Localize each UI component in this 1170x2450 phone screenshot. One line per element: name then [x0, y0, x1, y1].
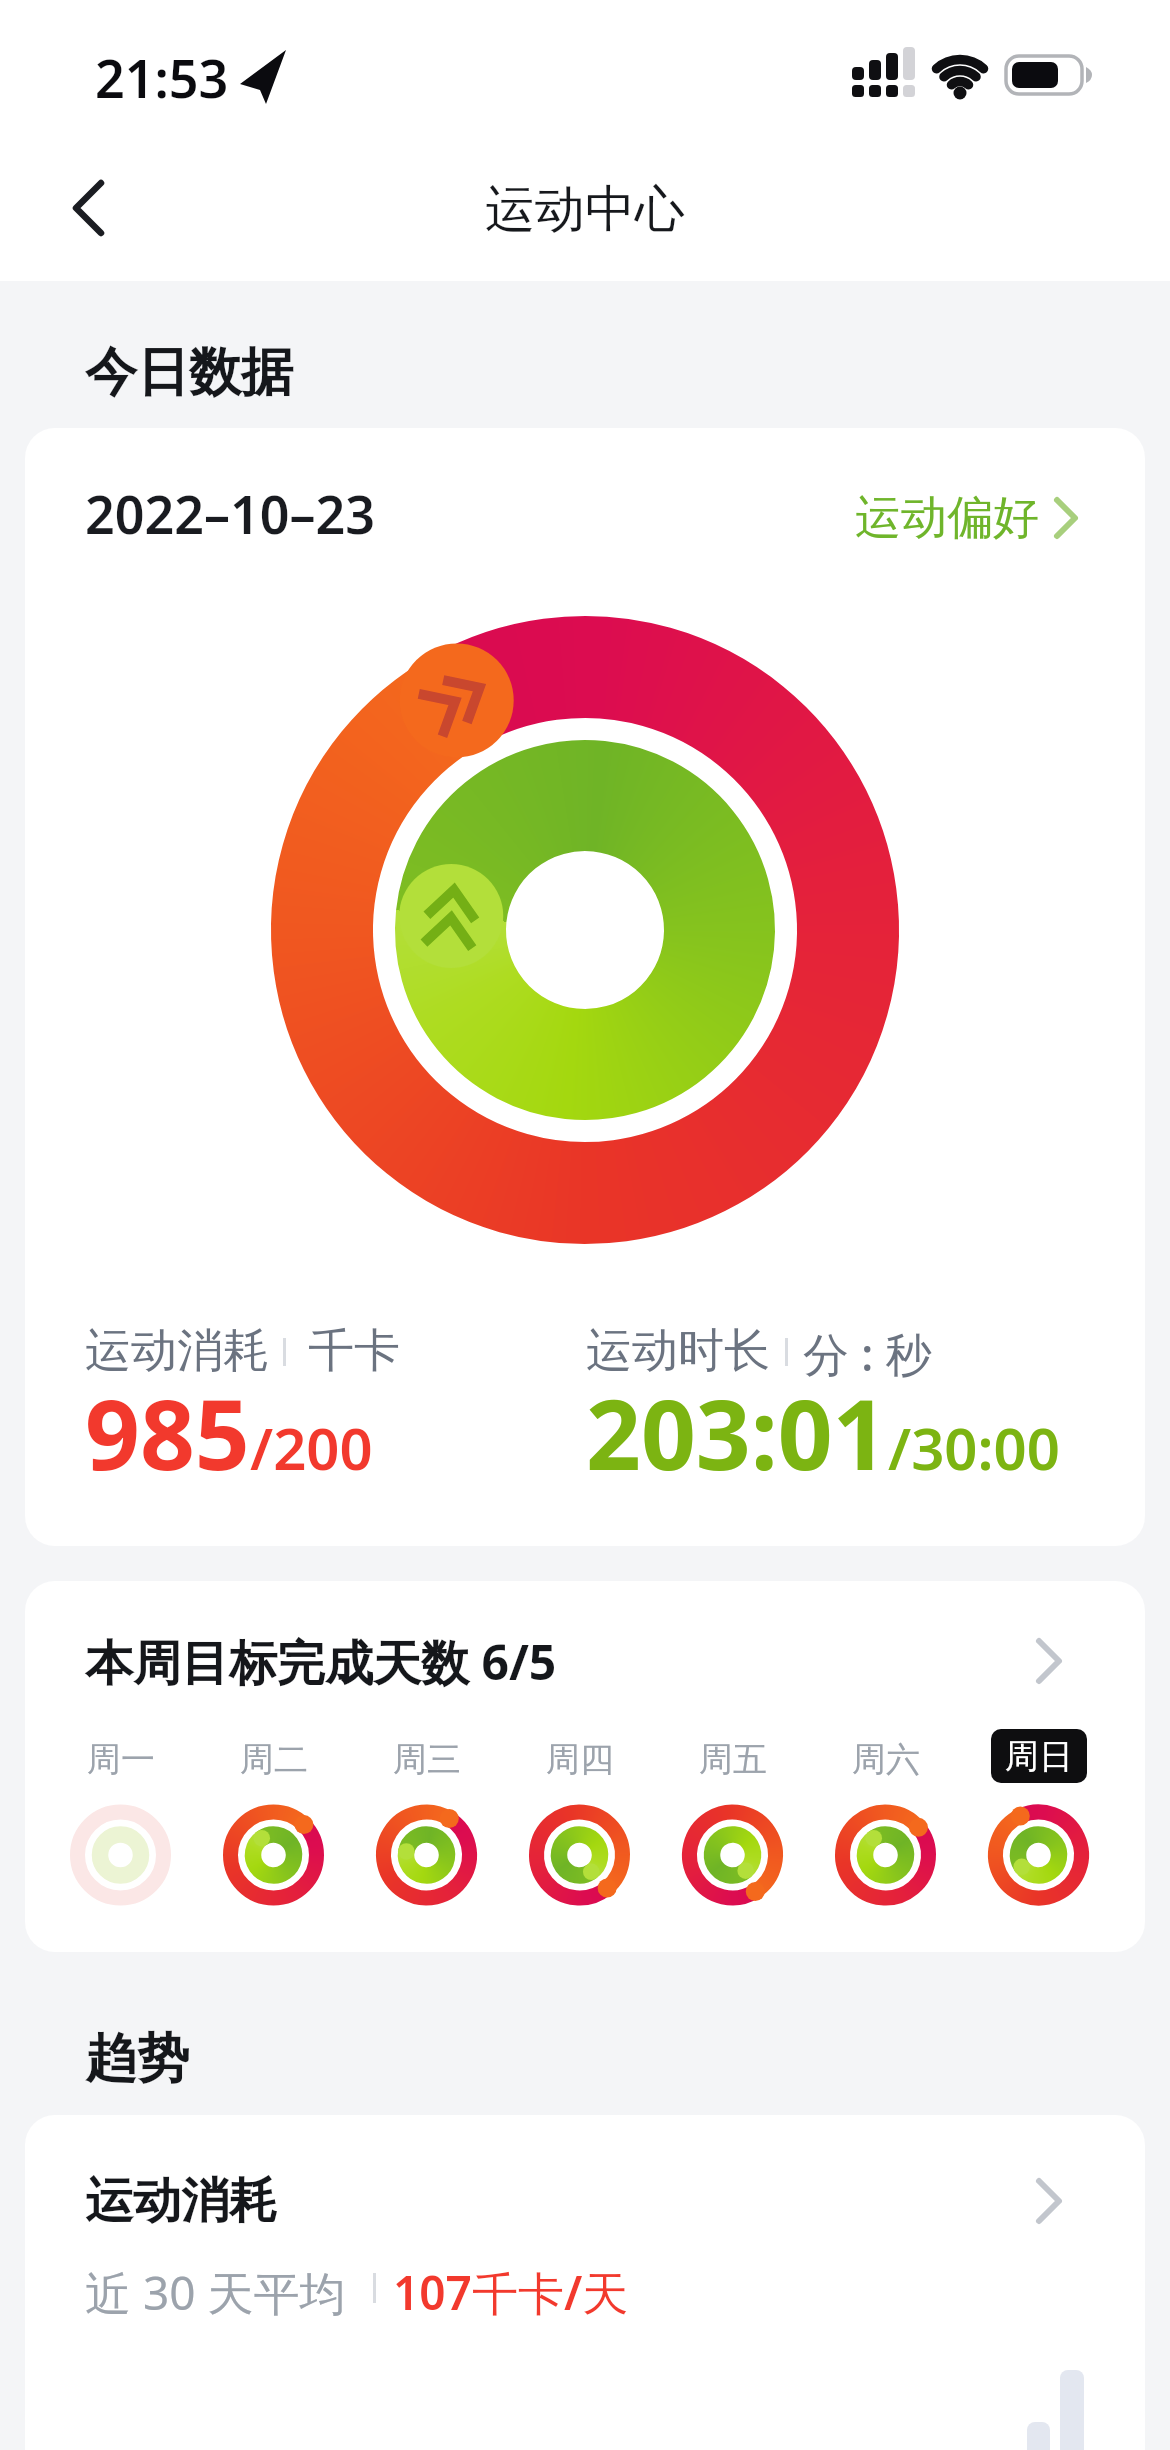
staticText: 今日数据 [85, 340, 293, 406]
staticText: /30:00 [888, 1408, 1060, 1487]
staticText: 107千卡/天 [393, 2261, 629, 2324]
staticText: 运动时长 [586, 1322, 770, 1380]
staticText: 周日 [1005, 1735, 1073, 1778]
staticText: 周三 [393, 1738, 461, 1781]
staticText: 21:53 [95, 42, 229, 113]
staticText: 2022–10–23 [85, 478, 375, 549]
staticText: 周五 [699, 1738, 767, 1781]
staticText: 本周目标完成天数 6/5 [85, 1629, 557, 1695]
staticText: 周二 [240, 1738, 308, 1781]
staticText: /200 [250, 1408, 373, 1487]
staticText: 运动偏好 [855, 489, 1039, 547]
button[interactable]: 运动消耗 [25, 2115, 1145, 2450]
staticText: 分 : 秒 [803, 1322, 932, 1385]
staticText: 千卡 [308, 1322, 400, 1380]
staticText: 运动消耗 [85, 2171, 277, 2231]
button[interactable]: 运动偏好 [855, 488, 1079, 548]
staticText: 周四 [546, 1738, 614, 1781]
staticText: 203:01 [586, 1367, 888, 1498]
staticText: 运动中心 [485, 178, 685, 238]
button[interactable]: 本周目标完成天数 6/5 [25, 1581, 1145, 1952]
staticText: 趋势 [85, 2026, 189, 2092]
staticText: 周一 [87, 1738, 155, 1781]
staticText: 近 30 天平均 [85, 2261, 346, 2324]
staticText: 运动消耗 [85, 1322, 269, 1380]
staticText: 985 [85, 1367, 250, 1498]
staticText: 周六 [852, 1738, 920, 1781]
button[interactable] [52, 172, 124, 244]
